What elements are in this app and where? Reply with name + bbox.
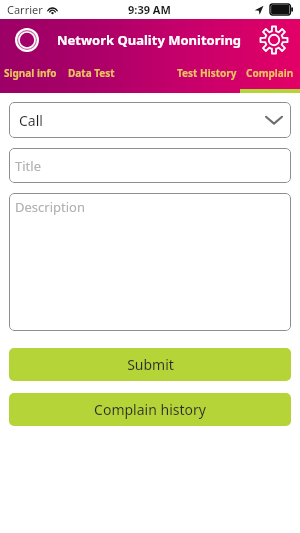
button[interactable]: Signal info [0, 61, 63, 93]
staticText: Data Test [68, 66, 115, 80]
staticText: Submit [127, 355, 174, 374]
staticText: Complain [246, 66, 294, 80]
staticText: 9:39 AM [128, 2, 171, 17]
button[interactable]: Data Test [63, 61, 124, 93]
staticText: Call [19, 111, 43, 130]
button[interactable]: Submit [9, 348, 291, 381]
button[interactable]: Settings [259, 25, 289, 55]
button[interactable]: Complain history [9, 393, 291, 426]
button[interactable]: Test History [168, 61, 240, 93]
staticText: Carrier [7, 2, 43, 17]
button[interactable]: Title [9, 148, 291, 183]
staticText: Title [15, 157, 41, 175]
button[interactable]: Complain [240, 61, 300, 93]
button[interactable]: Description [9, 193, 291, 331]
staticText: Signal info [4, 66, 57, 80]
staticText: Network Quality Monitoring [57, 31, 242, 49]
staticText: Description [15, 198, 85, 216]
button[interactable]: Call [9, 102, 291, 138]
staticText: Complain history [94, 400, 206, 419]
staticText: Test History [177, 66, 237, 80]
button[interactable]: Logo [15, 28, 39, 52]
